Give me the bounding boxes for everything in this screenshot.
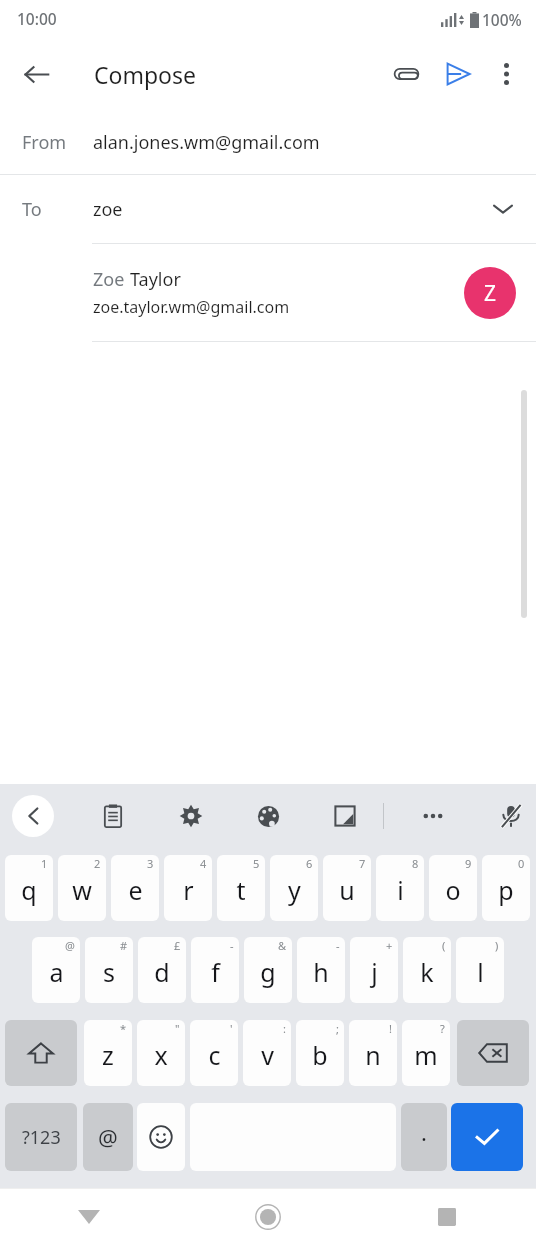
button[interactable]: Home (240, 1189, 296, 1245)
button[interactable]: Recents (419, 1189, 475, 1245)
button[interactable]: Back (10, 48, 62, 100)
button[interactable]: 3 (111, 855, 159, 921)
staticText: g (260, 955, 276, 989)
button[interactable]: Clipboard (90, 784, 136, 848)
button[interactable]: To (0, 175, 536, 243)
staticText: a (49, 955, 64, 989)
button[interactable]: £ (138, 937, 186, 1003)
button[interactable]: ? (402, 1020, 450, 1086)
button[interactable]: 8 (376, 855, 424, 921)
staticText: w (72, 873, 92, 907)
staticText: 100% (482, 9, 522, 30)
button[interactable]: ( (403, 937, 451, 1003)
button[interactable]: Settings (168, 784, 214, 848)
button[interactable]: * (84, 1020, 132, 1086)
staticText: ; (336, 1021, 339, 1036)
staticText: ' (230, 1021, 233, 1036)
staticText: n (365, 1038, 381, 1072)
button[interactable]: Expand recipients (480, 186, 526, 232)
button[interactable]: 4 (164, 855, 212, 921)
button[interactable]: 1 (5, 855, 53, 921)
staticText: From (22, 130, 67, 155)
staticText: d (154, 955, 170, 989)
staticText: @ (65, 938, 75, 953)
button[interactable]: Shift (5, 1020, 77, 1086)
button[interactable]: + (350, 937, 398, 1003)
staticText: c (208, 1038, 221, 1072)
staticText: zoe (93, 197, 123, 222)
staticText: y (288, 873, 301, 907)
staticText: z (102, 1038, 114, 1072)
staticText: ( (442, 938, 446, 953)
staticText: 1 (41, 856, 48, 871)
staticText: Taylor (130, 267, 181, 292)
staticText: r (183, 873, 194, 907)
staticText: & (278, 938, 287, 953)
button[interactable]: 9 (429, 855, 477, 921)
staticText: To (22, 197, 42, 222)
button[interactable]: Expand toolbar (12, 795, 54, 837)
button[interactable]: ' (190, 1020, 238, 1086)
button[interactable]: ; (296, 1020, 344, 1086)
button[interactable]: - (191, 937, 239, 1003)
staticText: p (498, 873, 514, 907)
staticText: Compose (94, 59, 197, 90)
button[interactable]: . (401, 1103, 447, 1171)
button[interactable]: " (137, 1020, 185, 1086)
button[interactable]: Zoe (0, 244, 536, 341)
button[interactable]: 5 (217, 855, 265, 921)
button[interactable]: 0 (482, 855, 530, 921)
staticText: 3 (147, 856, 154, 871)
button[interactable]: More (410, 784, 456, 848)
staticText: b (312, 1038, 328, 1072)
staticText: ? (440, 1021, 445, 1036)
button[interactable]: 7 (323, 855, 371, 921)
button[interactable]: Voice input off (488, 784, 534, 848)
staticText: u (339, 873, 355, 907)
button[interactable]: Send (432, 48, 484, 100)
button[interactable]: From (0, 110, 536, 174)
button[interactable]: Back (61, 1189, 117, 1245)
button[interactable]: : (243, 1020, 291, 1086)
button[interactable]: Attach file (380, 48, 432, 100)
button[interactable]: ?123 (5, 1103, 77, 1171)
staticText: l (477, 955, 484, 989)
button[interactable]: Done (451, 1103, 523, 1171)
staticText: : (283, 1021, 286, 1036)
button[interactable]: & (244, 937, 292, 1003)
button[interactable]: - (297, 937, 345, 1003)
button[interactable]: More options (484, 48, 528, 100)
button[interactable]: Theme (246, 784, 292, 848)
staticText: m (414, 1038, 438, 1072)
button[interactable]: Backspace (457, 1020, 529, 1086)
staticText: . (421, 1117, 427, 1147)
staticText: 7 (359, 856, 366, 871)
staticText: 0 (518, 856, 525, 871)
staticText: zoe.taylor.wm@gmail.com (93, 296, 290, 318)
button[interactable]: @ (83, 1103, 133, 1171)
button[interactable]: 2 (58, 855, 106, 921)
staticText: x (154, 1038, 168, 1072)
staticText: # (120, 938, 128, 953)
button[interactable]: 6 (270, 855, 318, 921)
button[interactable]: Emoji (137, 1103, 185, 1171)
staticText: + (386, 938, 393, 953)
staticText: 4 (200, 856, 207, 871)
staticText: o (445, 873, 461, 907)
button[interactable]: @ (32, 937, 80, 1003)
button[interactable]: # (85, 937, 133, 1003)
button[interactable]: Resize keyboard (322, 784, 368, 848)
staticText: - (230, 938, 234, 953)
staticText: t (236, 873, 246, 907)
button[interactable]: ! (349, 1020, 397, 1086)
staticText: s (103, 955, 115, 989)
staticText: h (313, 955, 329, 989)
staticText: 8 (412, 856, 419, 871)
staticText: £ (174, 938, 181, 953)
staticText: 9 (465, 856, 472, 871)
staticText: alan.jones.wm@gmail.com (93, 130, 320, 155)
staticText: v (261, 1038, 274, 1072)
button[interactable]: ) (456, 937, 504, 1003)
staticText: Zoe (93, 267, 130, 292)
